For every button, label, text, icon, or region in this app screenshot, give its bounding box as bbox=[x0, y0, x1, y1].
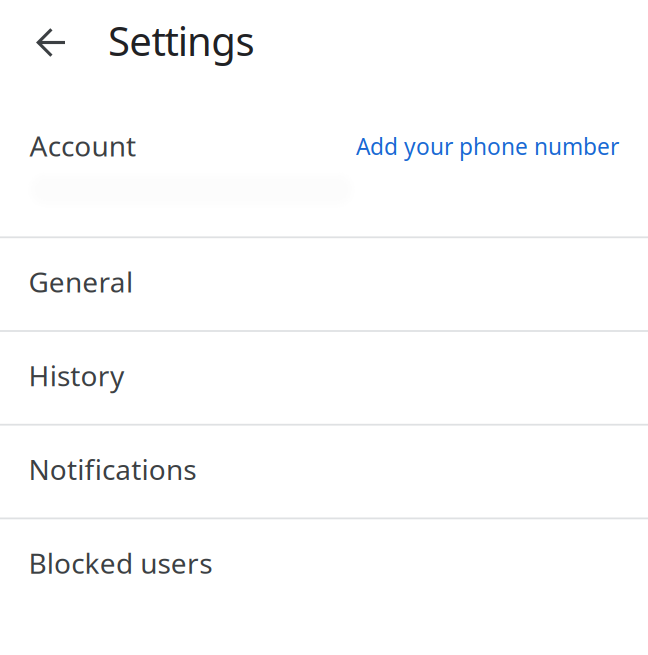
staticText: Notifications bbox=[29, 451, 196, 488]
staticText: History bbox=[29, 357, 124, 394]
staticText: General bbox=[29, 263, 133, 300]
button[interactable]: Account bbox=[0, 81, 648, 236]
button[interactable]: General bbox=[0, 238, 648, 330]
staticText: Blocked users bbox=[29, 544, 212, 581]
staticText: Add your phone number bbox=[356, 131, 619, 161]
staticText: Settings bbox=[108, 14, 254, 67]
button[interactable]: Notifications bbox=[0, 426, 648, 517]
button[interactable]: Back bbox=[36, 0, 72, 81]
button[interactable]: Settings bbox=[72, 0, 254, 81]
button[interactable]: Blocked users bbox=[0, 519, 648, 611]
button[interactable]: History bbox=[0, 332, 648, 424]
staticText: Account bbox=[30, 127, 136, 164]
